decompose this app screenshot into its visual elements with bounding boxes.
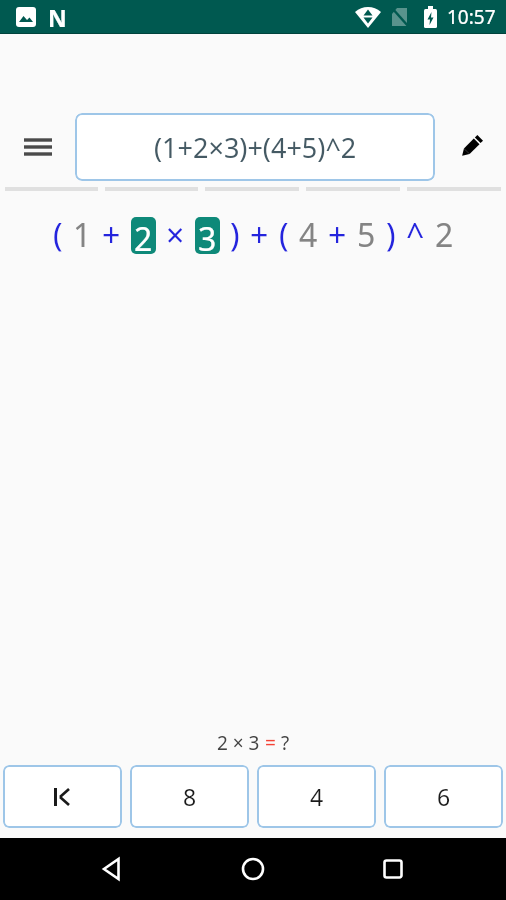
staticText: 5 [357, 213, 376, 257]
staticText: ) [386, 213, 396, 257]
staticText: + [102, 213, 121, 257]
staticText: 3 [198, 217, 217, 254]
button[interactable]: 8 [130, 765, 249, 828]
staticText: (1+2×3)+(4+5)^2 [154, 129, 357, 166]
button[interactable] [0, 113, 75, 181]
staticText: × [166, 213, 185, 257]
button[interactable] [435, 113, 506, 181]
button[interactable] [183, 838, 323, 900]
staticText: 2 [435, 213, 454, 257]
staticText: N [48, 2, 67, 33]
button[interactable]: (1+2×3)+(4+5)^2 [75, 113, 435, 181]
staticText: 8 [183, 781, 197, 812]
staticText: 1 [73, 213, 92, 257]
staticText: 2 × 3 [217, 730, 265, 756]
button[interactable] [43, 838, 183, 900]
staticText: + [250, 213, 269, 257]
button[interactable] [323, 838, 463, 900]
staticText: ( [53, 213, 63, 257]
staticText: + [328, 213, 347, 257]
staticText: 4 [310, 781, 324, 812]
staticText: ( [279, 213, 289, 257]
button[interactable]: 4 [257, 765, 376, 828]
staticText: = [265, 730, 276, 756]
staticText: ? [276, 730, 290, 756]
staticText: 10:57 [447, 4, 496, 30]
staticText: 4 [299, 213, 318, 257]
button[interactable] [3, 765, 122, 828]
staticText: 2 [134, 217, 153, 254]
button[interactable]: 6 [384, 765, 503, 828]
staticText: ) [230, 213, 240, 257]
staticText: ^ [406, 213, 425, 257]
staticText: 6 [437, 781, 451, 812]
